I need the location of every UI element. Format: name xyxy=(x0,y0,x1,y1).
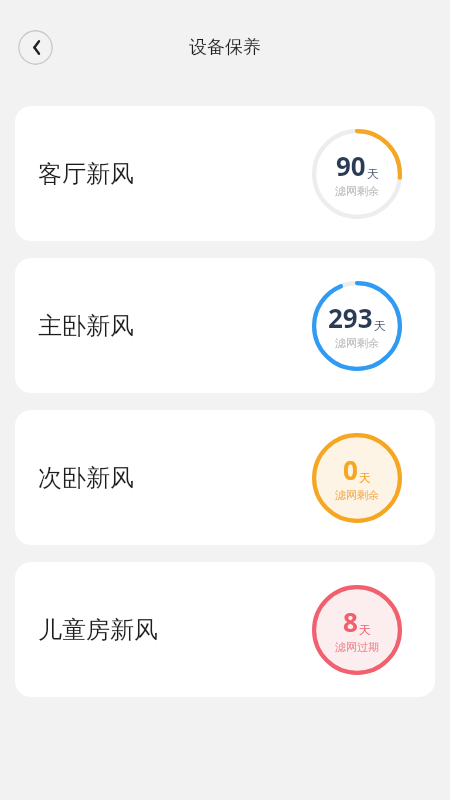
staticText: 设备保养 xyxy=(189,36,261,59)
staticText: 天 xyxy=(374,318,386,333)
staticText: 0 xyxy=(343,452,358,487)
staticText: 8 xyxy=(343,604,358,639)
button[interactable]: Back xyxy=(18,30,53,65)
staticText: 天 xyxy=(367,166,379,181)
staticText: 90 xyxy=(336,148,366,183)
staticText: 天 xyxy=(359,470,371,485)
staticText: 儿童房新风 xyxy=(38,615,158,645)
button[interactable]: 次卧新风 xyxy=(15,410,435,545)
button[interactable]: 客厅新风 xyxy=(15,106,435,241)
staticText: 次卧新风 xyxy=(38,463,134,493)
staticText: 滤网过期 xyxy=(335,640,379,654)
staticText: 天 xyxy=(359,622,371,637)
staticText: 滤网剩余 xyxy=(335,184,379,198)
button[interactable]: 儿童房新风 xyxy=(15,562,435,697)
button[interactable]: 主卧新风 xyxy=(15,258,435,393)
staticText: 滤网剩余 xyxy=(335,488,379,502)
staticText: 客厅新风 xyxy=(38,159,134,189)
staticText: 主卧新风 xyxy=(38,311,134,341)
staticText: 滤网剩余 xyxy=(335,336,379,350)
staticText: 293 xyxy=(328,300,373,335)
